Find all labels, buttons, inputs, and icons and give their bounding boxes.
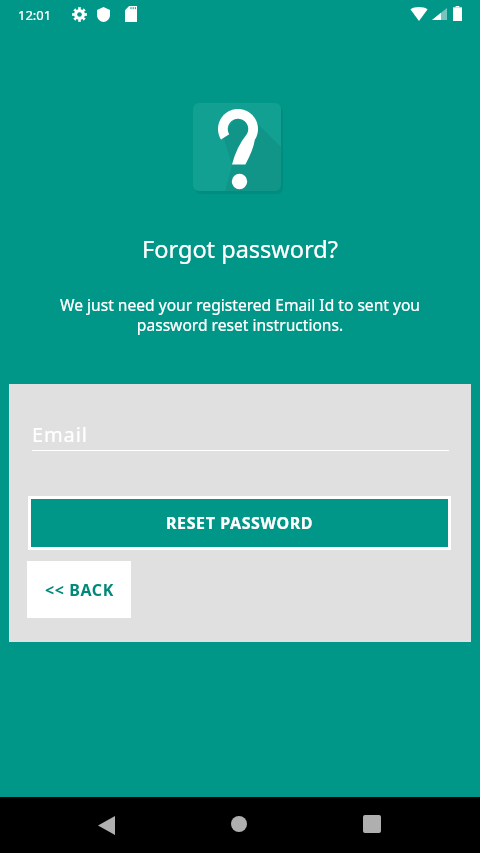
button[interactable]: Home	[217, 802, 261, 846]
staticText: RESET PASSWORD	[166, 512, 314, 534]
button[interactable]: << BACK	[27, 561, 131, 618]
staticText: Forgot password?	[0, 233, 480, 265]
button[interactable]: Recent apps	[350, 802, 394, 846]
staticText: Email	[32, 421, 88, 448]
button[interactable]: RESET PASSWORD	[31, 499, 448, 547]
staticText: 12:01	[18, 6, 52, 24]
button[interactable]: Back	[84, 803, 128, 847]
staticText: We just need your registered Email Id to…	[56, 294, 424, 336]
button[interactable]: Email	[32, 408, 449, 451]
staticText: << BACK	[45, 579, 114, 601]
